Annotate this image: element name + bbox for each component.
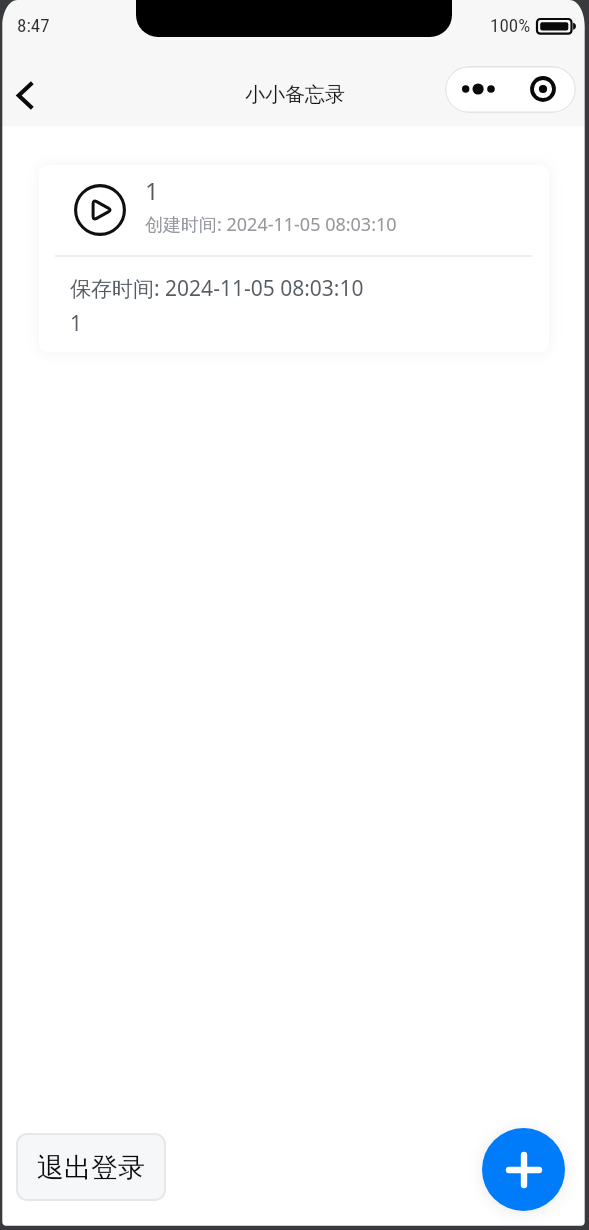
staticText: 8:47 xyxy=(17,14,50,36)
button[interactable]: 1 xyxy=(39,165,549,352)
staticText: 1 xyxy=(145,174,159,207)
staticText: 创建时间: 2024-11-05 08:03:10 xyxy=(145,212,397,237)
button[interactable]: Back xyxy=(2,66,48,124)
button[interactable]: 退出登录 xyxy=(16,1133,166,1201)
staticText: 保存时间: 2024-11-05 08:03:10 xyxy=(70,274,364,303)
staticText: 100% xyxy=(490,14,531,36)
staticText: 小小备忘录 xyxy=(245,82,345,107)
button[interactable]: More options and close xyxy=(445,66,576,113)
button[interactable]: Add note xyxy=(482,1128,565,1211)
staticText: 1 xyxy=(70,309,83,338)
staticText: 退出登录 xyxy=(37,1151,145,1185)
